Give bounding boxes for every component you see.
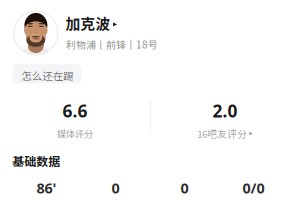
staticText: 基础数据: [12, 152, 60, 169]
staticText: 媒体评分: [57, 127, 93, 140]
staticText: 86': [36, 178, 56, 198]
staticText: 怎么还在踢: [21, 68, 73, 83]
staticText: 16吧友评分: [197, 127, 247, 140]
button[interactable]: 怎么还在踢: [12, 64, 81, 83]
staticText: 0/0: [242, 178, 264, 198]
staticText: 0: [180, 178, 188, 198]
staticText: 6.6: [62, 99, 87, 123]
staticText: 2.0: [212, 99, 237, 123]
button[interactable]: 加克波: [65, 12, 117, 34]
button[interactable]: 6.6: [0, 99, 150, 140]
staticText: 利物浦丨前锋丨18号: [66, 37, 158, 51]
button[interactable]: 2.0: [150, 99, 300, 140]
staticText: 0: [111, 178, 119, 198]
staticText: 加克波: [65, 12, 110, 34]
button[interactable]: 球员头像: [14, 11, 58, 55]
